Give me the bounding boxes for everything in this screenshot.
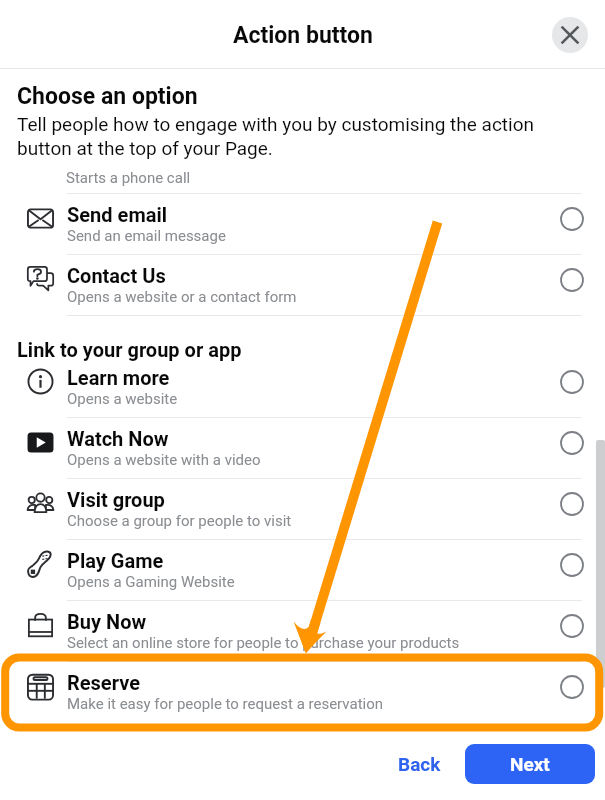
staticText: Send email	[67, 203, 168, 226]
staticText: Opens a Gaming Website	[67, 573, 235, 591]
button[interactable]: Learn more	[0, 356, 605, 417]
staticText: Back	[398, 753, 441, 775]
staticText: Reserve	[67, 671, 140, 694]
staticText: Link to your group or app	[17, 338, 242, 361]
button[interactable]: Buy Now	[0, 600, 605, 661]
staticText: Select an online store for people to pur…	[67, 634, 460, 652]
staticText: Next	[510, 753, 550, 775]
staticText: Visit group	[67, 488, 165, 511]
staticText: Watch Now	[67, 427, 169, 450]
button[interactable]: Watch Now	[0, 417, 605, 478]
staticText: Play Game	[67, 549, 164, 572]
staticText: Learn more	[67, 366, 170, 389]
staticText: Opens a website with a video	[67, 451, 261, 469]
staticText: Opens a website	[67, 390, 178, 408]
button[interactable]: Next	[465, 744, 595, 784]
staticText: Buy Now	[67, 610, 147, 633]
button[interactable]: Send email	[0, 193, 605, 254]
staticText: Starts a phone call	[66, 169, 191, 187]
button[interactable]: Play Game	[0, 539, 605, 600]
staticText: Tell people how to engage with you by cu…	[17, 113, 565, 160]
staticText: Make it easy for people to request a res…	[67, 695, 384, 713]
button[interactable]: Visit group	[0, 478, 605, 539]
button[interactable]: Reserve	[0, 661, 605, 722]
staticText: Choose an option	[17, 83, 198, 110]
staticText: Opens a website or a contact form	[67, 288, 297, 306]
button[interactable]: Back	[384, 743, 455, 785]
staticText: Send an email message	[67, 227, 226, 245]
button[interactable]: Contact Us	[0, 254, 605, 315]
staticText: Choose a group for people to visit	[67, 512, 292, 530]
staticText: Contact Us	[67, 264, 166, 287]
staticText: Action button	[233, 22, 373, 49]
button[interactable]: Close	[552, 17, 588, 53]
